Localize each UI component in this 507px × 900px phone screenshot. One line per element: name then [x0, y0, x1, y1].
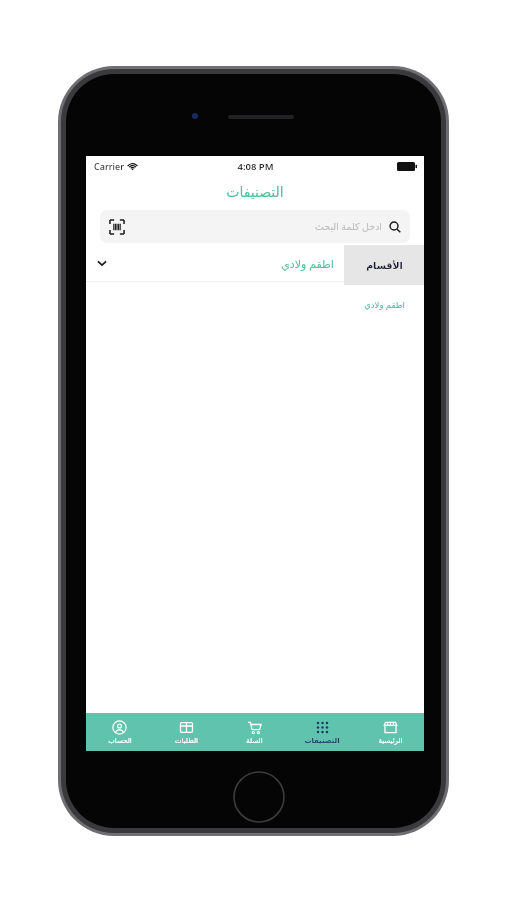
- staticText: السلة: [246, 737, 263, 745]
- staticText: Carrier: [94, 160, 124, 172]
- staticText: الطلبات: [175, 737, 198, 745]
- button[interactable]: الأقسام: [344, 245, 424, 285]
- staticText: ادخل كلمة البحث: [315, 220, 382, 233]
- staticText: اطقم ولادي: [364, 299, 405, 311]
- button[interactable]: الحساب: [86, 713, 153, 751]
- button[interactable]: Expand: [86, 245, 344, 281]
- staticText: الرئيسية: [378, 737, 403, 745]
- button[interactable]: الطلبات: [153, 713, 220, 751]
- other: Expand: [96, 257, 108, 269]
- staticText: الأقسام: [366, 260, 403, 271]
- button[interactable]: اطقم ولادي: [344, 285, 424, 325]
- other: Scan barcode: [109, 219, 125, 235]
- button[interactable]: التصنيفات: [288, 713, 356, 751]
- staticText: اطقم ولادي: [281, 256, 334, 271]
- staticText: التصنيفات: [304, 737, 340, 745]
- button[interactable]: Scan barcode: [100, 210, 410, 243]
- staticText: الحساب: [108, 737, 132, 745]
- button[interactable]: السلة: [220, 713, 288, 751]
- staticText: 4:08 PM: [237, 160, 274, 173]
- button[interactable]: الرئيسية: [356, 713, 424, 751]
- staticText: التصنيفات: [226, 184, 284, 200]
